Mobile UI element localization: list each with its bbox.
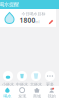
staticText: 今日喝水目标 — [21, 11, 45, 16]
button[interactable]: 商城 — [29, 87, 44, 99]
staticText: 商城 — [33, 94, 41, 99]
button[interactable]: 大杯水 — [29, 71, 43, 87]
staticText: 1800 — [19, 16, 35, 25]
staticText: 喝水 — [3, 94, 11, 99]
button[interactable]: 我的 — [44, 87, 59, 99]
staticText: 小杯水 — [2, 82, 14, 87]
staticText: 大杯水 — [30, 82, 42, 87]
staticText: 喝水提醒 — [0, 1, 19, 8]
button[interactable]: 中杯水 — [15, 71, 29, 87]
staticText: 中杯水 — [16, 82, 28, 87]
button[interactable]: Edit goal — [49, 20, 53, 24]
staticText: 更多 — [46, 82, 54, 87]
staticText: 发现 — [18, 94, 26, 99]
staticText: 我的 — [48, 94, 56, 99]
button[interactable]: 小杯水 — [1, 71, 15, 87]
button[interactable]: 更多 — [43, 71, 57, 87]
button[interactable]: 发现 — [15, 87, 30, 99]
staticText: ml — [34, 19, 39, 24]
button[interactable]: 喝水 — [0, 87, 15, 99]
